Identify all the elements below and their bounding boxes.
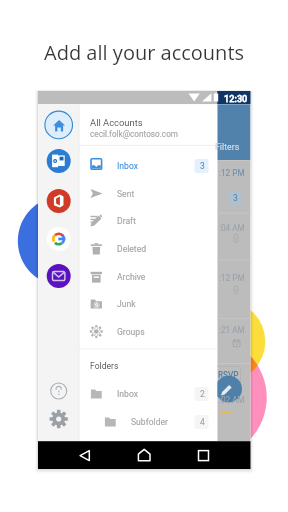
- staticText: 12:30: [224, 93, 248, 104]
- staticText: 2: [200, 389, 205, 399]
- staticText: All Accounts: [90, 117, 143, 128]
- button[interactable]: Compose: [215, 376, 242, 403]
- button[interactable]: [79, 236, 217, 263]
- staticText: Inbox: [117, 389, 138, 399]
- button[interactable]: Google account: [47, 227, 71, 251]
- button[interactable]: Help: [49, 381, 69, 401]
- staticText: Groups: [117, 327, 145, 337]
- staticText: Junk: [117, 299, 136, 309]
- button[interactable]: [79, 153, 217, 179]
- staticText: Sent: [117, 189, 135, 199]
- staticText: Subfolder: [131, 417, 168, 427]
- staticText: Archive: [117, 272, 146, 282]
- button[interactable]: Outlook account: [47, 149, 71, 173]
- button[interactable]: [79, 381, 217, 408]
- staticText: Add all your accounts: [44, 39, 244, 66]
- button[interactable]: Settings: [49, 409, 69, 429]
- button[interactable]: [79, 180, 217, 207]
- staticText: RSVP: [218, 370, 239, 380]
- staticText: :04 AM: [219, 223, 245, 233]
- button[interactable]: [79, 263, 217, 290]
- staticText: :12 PM: [219, 273, 245, 283]
- button[interactable]: [79, 291, 217, 318]
- button[interactable]: [79, 318, 217, 345]
- button[interactable]: Recents: [196, 441, 228, 469]
- staticText: :21 AM: [219, 325, 245, 335]
- staticText: Filters: [215, 142, 240, 152]
- staticText: Inbox: [117, 161, 138, 171]
- staticText: :12 PM: [219, 168, 245, 178]
- button[interactable]: Mail account: [47, 264, 71, 288]
- staticText: 3: [233, 193, 238, 203]
- button[interactable]: Back: [58, 441, 90, 469]
- staticText: Folders: [90, 361, 119, 371]
- button[interactable]: [79, 409, 217, 436]
- staticText: 4: [200, 417, 205, 427]
- button[interactable]: All accounts: [44, 111, 73, 140]
- staticText: Draft: [117, 216, 136, 226]
- button[interactable]: Home: [128, 441, 160, 469]
- staticText: Deleted: [117, 244, 147, 254]
- button[interactable]: [79, 208, 217, 235]
- staticText: 3: [200, 161, 205, 171]
- staticText: :02 AM: [219, 395, 245, 405]
- staticText: cecil.folk@contoso.com: [90, 129, 178, 139]
- button[interactable]: Office account: [47, 189, 71, 213]
